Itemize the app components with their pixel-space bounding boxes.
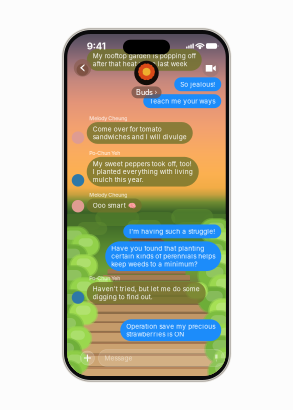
staticText: My sweet peppers took off, too! I plante… — [93, 160, 193, 183]
staticText: Po-Chun Yeh — [89, 150, 120, 156]
staticText: 9:41 — [87, 40, 106, 52]
staticText: Haven't tried, but let me do some diggin… — [93, 285, 200, 301]
staticText: Have you found that planting certain kin… — [111, 244, 215, 268]
staticText: Buds — [136, 88, 153, 97]
staticText: Come over for tomato sandwiches and I wi… — [93, 125, 187, 141]
button[interactable]: Back — [72, 58, 92, 78]
staticText: I'm having such a struggle! — [129, 227, 215, 235]
button[interactable]: Add attachment — [79, 349, 96, 366]
button[interactable]: FaceTime — [201, 58, 221, 78]
staticText: Melody Cheung — [89, 115, 127, 122]
button[interactable]: Buds group details — [126, 61, 166, 98]
staticText: Melody Cheung — [89, 192, 127, 198]
staticText: Ooo smart 🧠 — [93, 201, 136, 209]
staticText: So jealous! — [180, 80, 215, 88]
staticText: Teach me your ways — [149, 97, 215, 105]
staticText: Message — [104, 354, 132, 362]
staticText: Operation save my precious strawberries … — [126, 322, 215, 338]
staticText: My rooftop garden is popping off after t… — [93, 52, 196, 68]
button[interactable]: Message — [98, 349, 224, 366]
staticText: Po-Chun Yeh — [89, 275, 120, 282]
